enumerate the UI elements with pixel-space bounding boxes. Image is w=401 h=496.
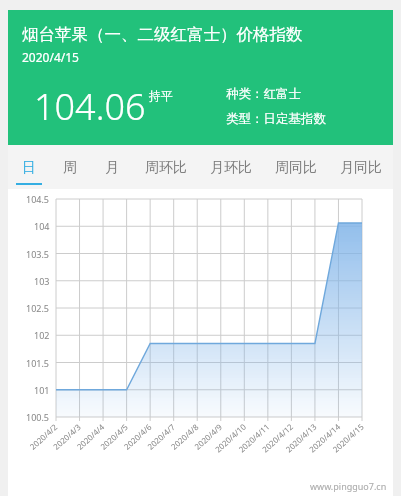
staticText: 种类：红富士 [226,86,301,102]
staticText: 周环比 [145,159,187,177]
staticText: 日 [22,159,36,177]
button[interactable]: 月同比 [328,145,393,189]
button[interactable]: 日 [8,145,49,189]
button[interactable]: 月 [91,145,133,189]
staticText: 持平 [149,88,173,103]
staticText: 月环比 [210,159,252,177]
button[interactable]: 月环比 [198,145,263,189]
staticText: 月同比 [340,159,382,177]
staticText: 烟台苹果（一、二级红富士）价格指数 [22,24,303,45]
button[interactable]: 周 [49,145,91,189]
staticText: 月 [105,159,119,177]
staticText: 104.06 [34,82,146,131]
staticText: 周同比 [275,159,317,177]
staticText: 类型：日定基指数 [226,111,326,127]
staticText: 周 [63,159,77,177]
button[interactable]: 周环比 [133,145,198,189]
staticText: www.pingguo7.cn [310,480,387,492]
button[interactable]: 周同比 [263,145,328,189]
staticText: 2020/4/15 [22,49,79,65]
